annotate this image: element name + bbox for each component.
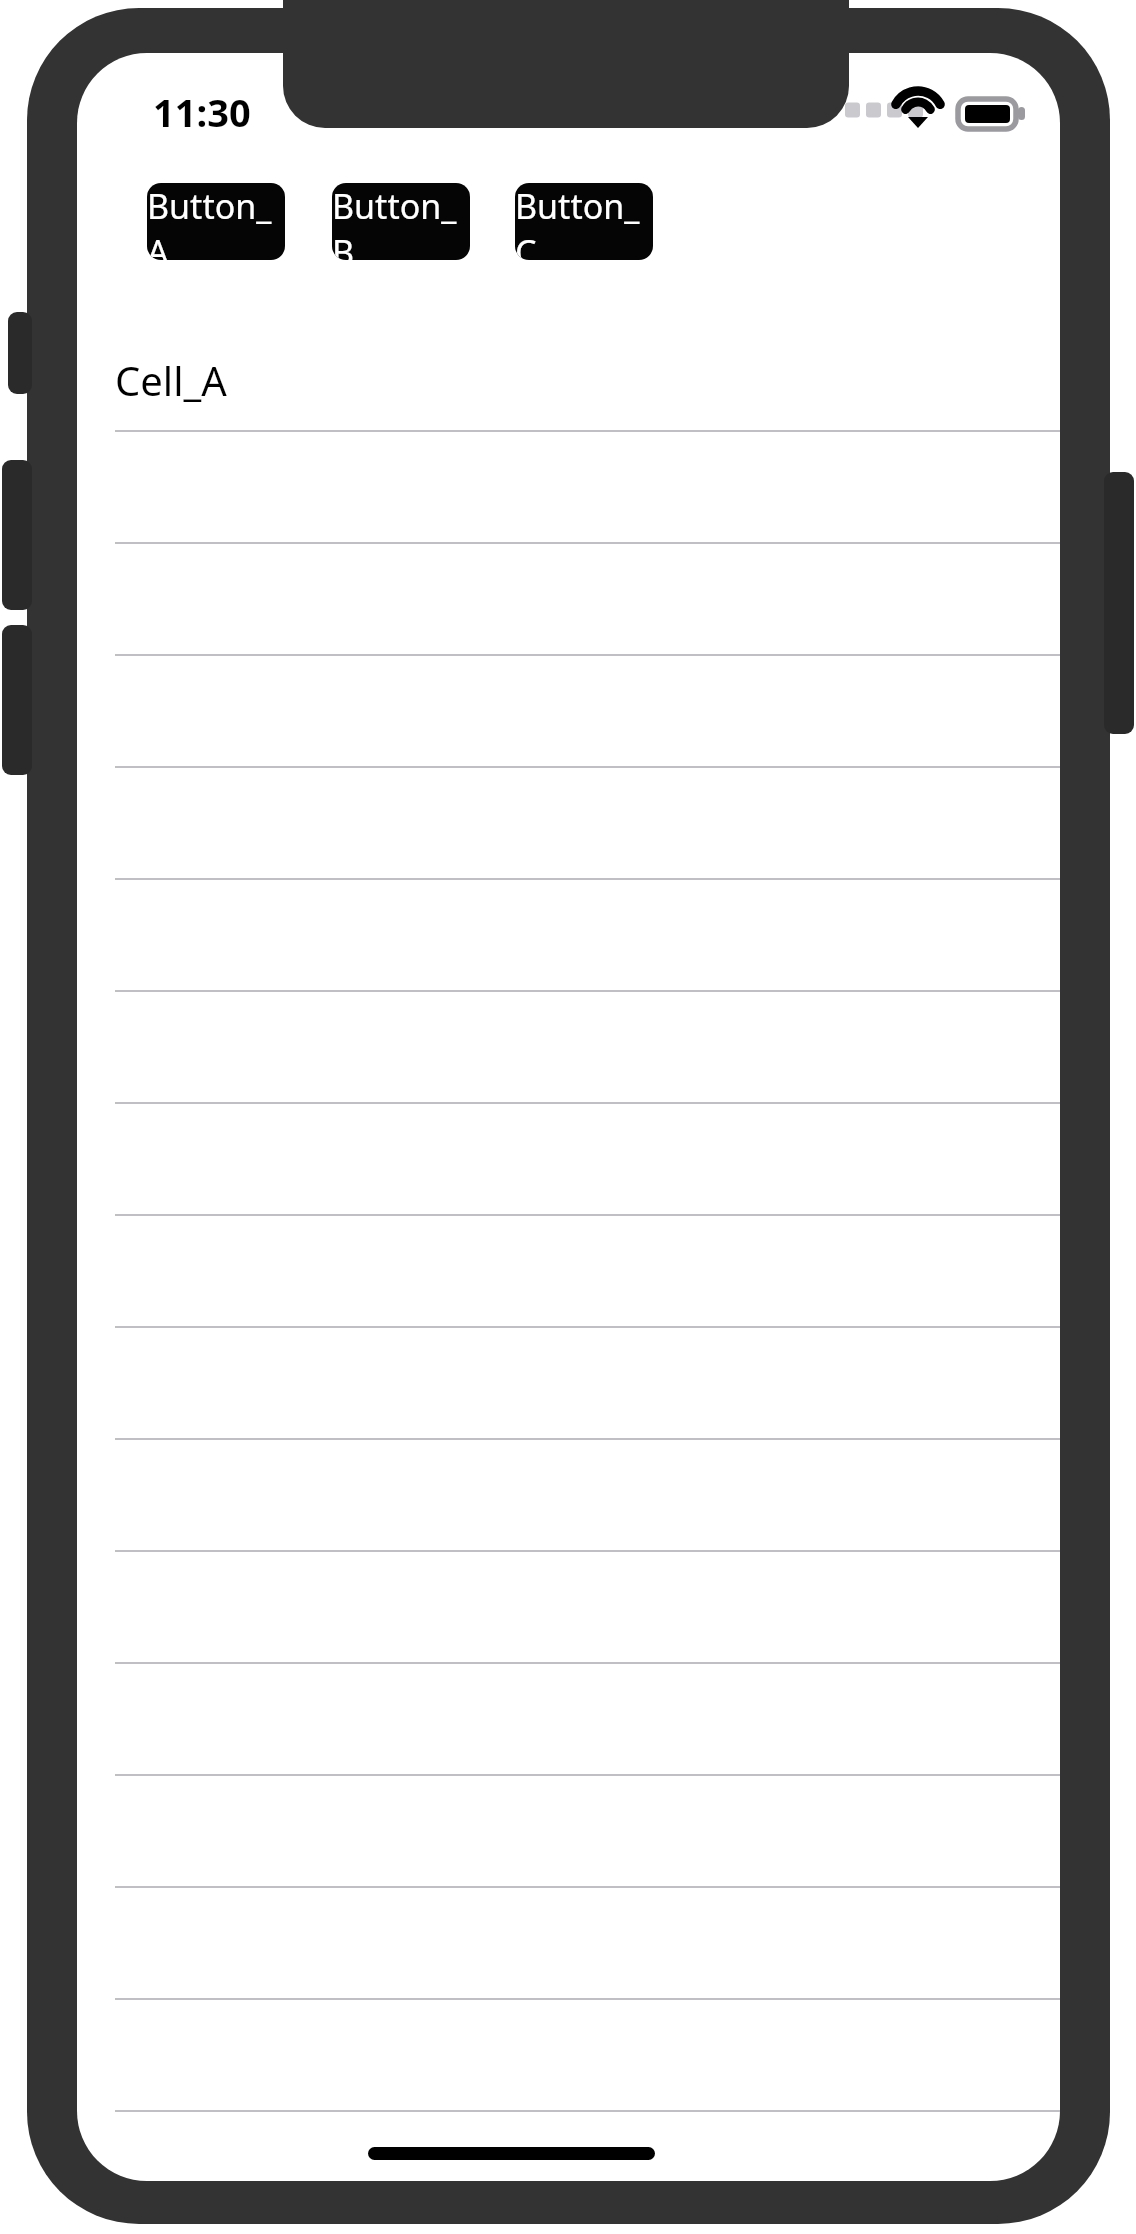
other: Home indicator bbox=[368, 2147, 655, 2160]
staticText: Button_A bbox=[147, 183, 285, 260]
button[interactable] bbox=[115, 992, 1060, 1104]
button[interactable] bbox=[115, 544, 1060, 656]
button[interactable] bbox=[115, 1328, 1060, 1440]
button[interactable] bbox=[115, 880, 1060, 992]
staticText: Button_B bbox=[332, 183, 470, 260]
button[interactable] bbox=[115, 1888, 1060, 2000]
button[interactable] bbox=[115, 768, 1060, 880]
button[interactable]: Button_C bbox=[515, 183, 653, 260]
button[interactable]: Button_B bbox=[332, 183, 470, 260]
button[interactable] bbox=[115, 1664, 1060, 1776]
button[interactable] bbox=[115, 1104, 1060, 1216]
button[interactable] bbox=[115, 1552, 1060, 1664]
staticText: 11:30 bbox=[153, 86, 251, 138]
button[interactable]: Cell_A bbox=[115, 330, 1060, 430]
staticText: Button_C bbox=[515, 183, 653, 260]
staticText: Cell_A bbox=[115, 353, 227, 407]
button[interactable]: Button_A bbox=[147, 183, 285, 260]
button[interactable] bbox=[115, 2000, 1060, 2112]
button[interactable] bbox=[115, 432, 1060, 544]
button[interactable] bbox=[115, 1440, 1060, 1552]
button[interactable] bbox=[115, 656, 1060, 768]
button[interactable] bbox=[115, 1776, 1060, 1888]
button[interactable] bbox=[115, 1216, 1060, 1328]
